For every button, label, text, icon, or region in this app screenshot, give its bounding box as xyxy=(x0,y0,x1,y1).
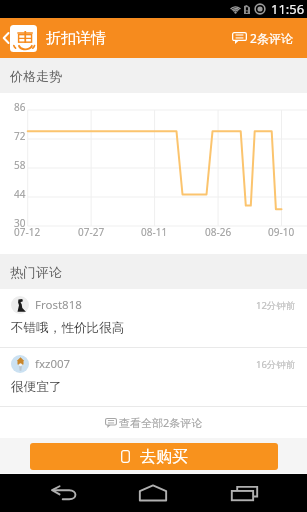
staticText: 44 xyxy=(14,187,26,201)
button[interactable]: Home xyxy=(117,474,189,512)
staticText: 不错哦，性价比很高 xyxy=(11,320,125,336)
button[interactable]: Back xyxy=(28,474,100,512)
staticText: 去购买 xyxy=(140,447,188,467)
staticText: 58 xyxy=(14,158,26,172)
staticText: 热门评论 xyxy=(10,264,62,280)
staticText: 价格走势 xyxy=(10,68,62,84)
button[interactable]: 2条评论 xyxy=(222,18,307,58)
button[interactable]: Frost818 xyxy=(0,289,307,347)
staticText: 很便宜了 xyxy=(11,379,62,395)
staticText: fxz007 xyxy=(35,356,71,372)
staticText: 16分钟前 xyxy=(256,358,296,371)
staticText: 08-26 xyxy=(205,225,232,239)
staticText: 查看全部2条评论 xyxy=(119,415,203,430)
staticText: 08-11 xyxy=(141,225,168,239)
staticText: 07-12 xyxy=(14,225,41,239)
staticText: 07-27 xyxy=(78,225,105,239)
staticText: 30 xyxy=(14,216,26,230)
staticText: 11:56 xyxy=(271,0,305,18)
button[interactable]: fxz007 xyxy=(0,348,307,406)
button[interactable]: Recents xyxy=(208,474,280,512)
staticText: 12分钟前 xyxy=(256,299,296,312)
button[interactable]: 去购买 xyxy=(30,443,278,470)
button[interactable]: Back xyxy=(0,18,37,58)
staticText: 09-10 xyxy=(268,225,295,239)
staticText: 2条评论 xyxy=(250,30,293,46)
staticText: 折扣详情 xyxy=(46,29,106,48)
staticText: 72 xyxy=(14,129,26,143)
button[interactable]: 查看全部2条评论 xyxy=(0,407,307,438)
staticText: Frost818 xyxy=(35,297,82,313)
staticText: 86 xyxy=(14,100,26,114)
